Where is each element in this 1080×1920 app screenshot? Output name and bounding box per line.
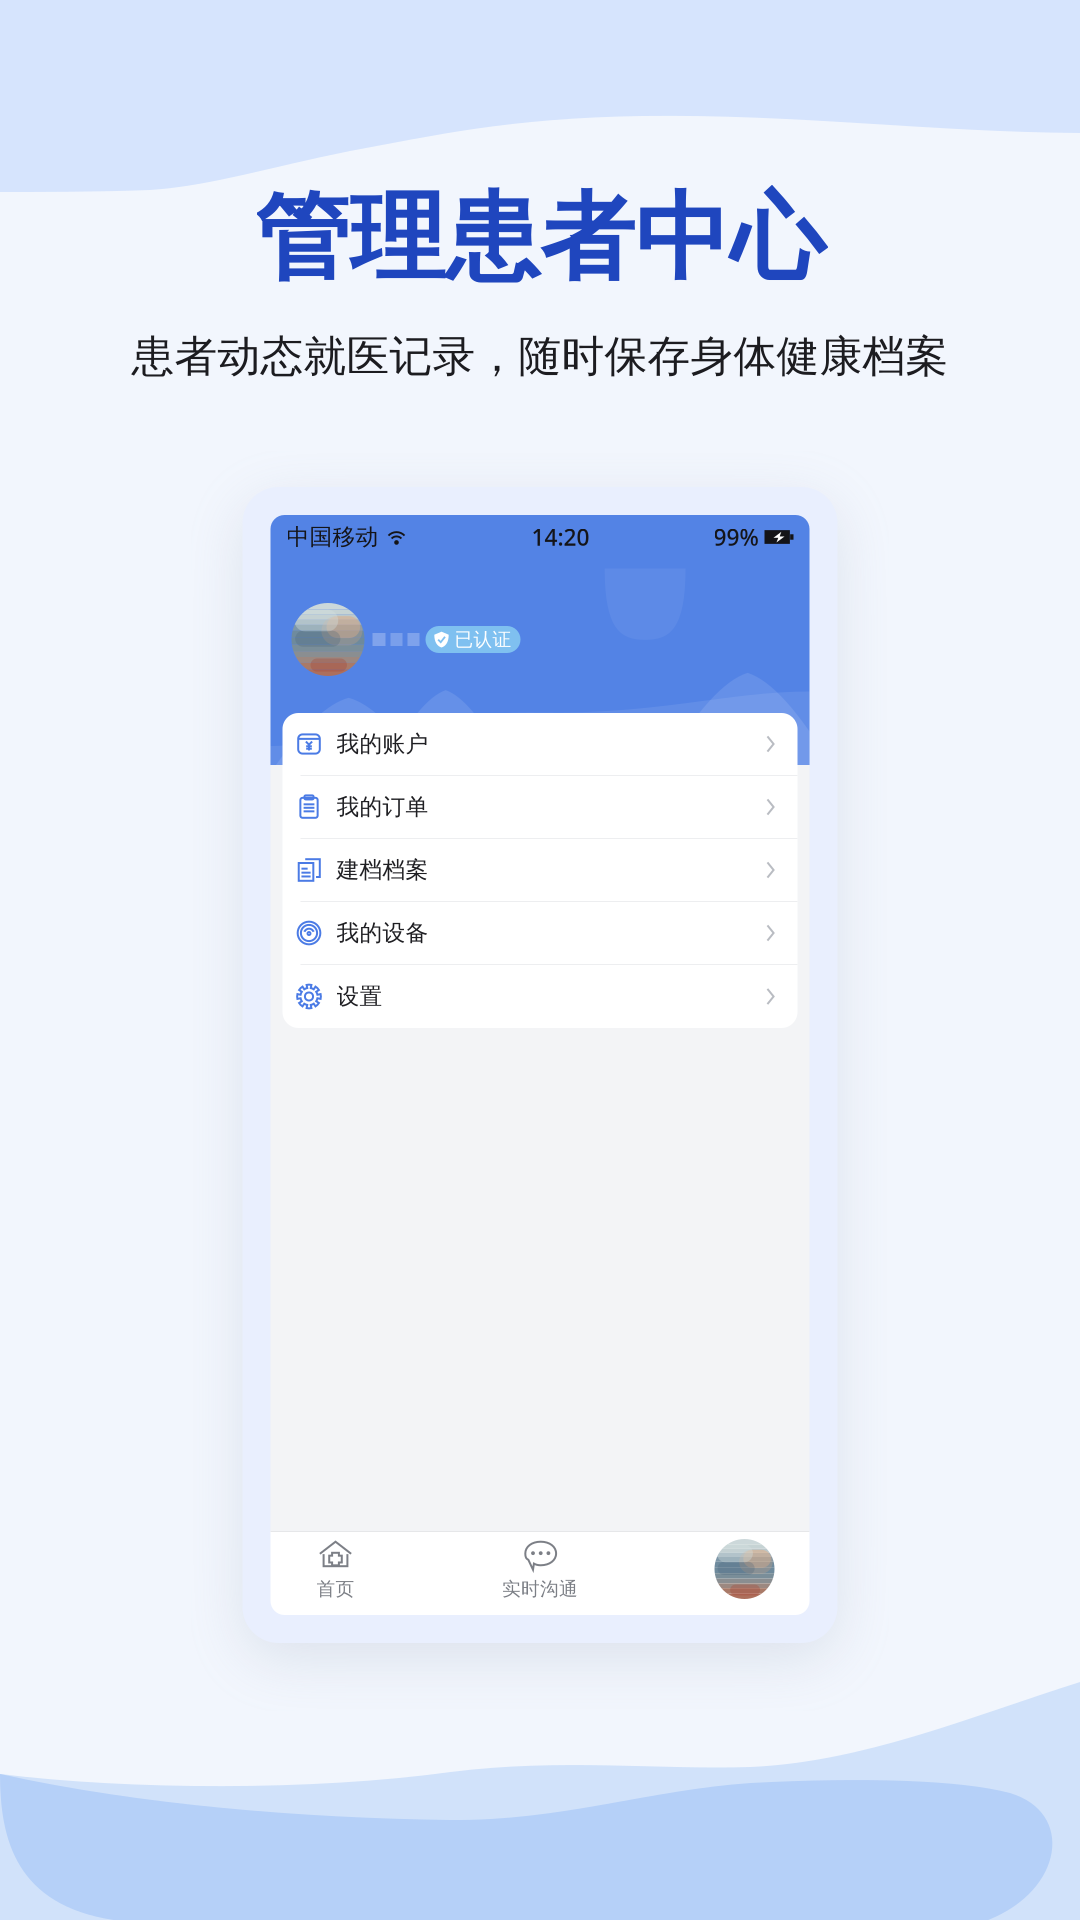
staticText: 14:20 [531, 522, 589, 552]
staticText: 99% [713, 522, 758, 552]
staticText: 实时沟通 [502, 1577, 578, 1600]
staticText: 建档档案 [336, 856, 428, 884]
button[interactable]: 首页 [270, 1531, 400, 1607]
staticText: 我的设备 [336, 919, 428, 947]
staticText: 设置 [336, 983, 382, 1010]
button[interactable]: 我的 [679, 1531, 809, 1607]
button[interactable]: 建档档案 [282, 839, 797, 902]
staticText: 我的账户 [336, 730, 428, 758]
button[interactable]: 我的账户 [282, 713, 797, 776]
staticText: 患者动态就医记录，随时保存身体健康档案 [131, 330, 948, 383]
staticText: 首页 [316, 1577, 354, 1600]
button[interactable]: 设置 [282, 965, 797, 1028]
button[interactable]: 我的设备 [282, 902, 797, 965]
button[interactable]: 我的订单 [282, 776, 797, 839]
staticText: 我的订单 [336, 793, 428, 821]
staticText: 中国移动 [286, 523, 378, 551]
staticText: 已认证 [454, 628, 511, 651]
staticText: 管理患者中心 [255, 180, 825, 296]
button[interactable]: 实时沟通 [475, 1531, 605, 1607]
